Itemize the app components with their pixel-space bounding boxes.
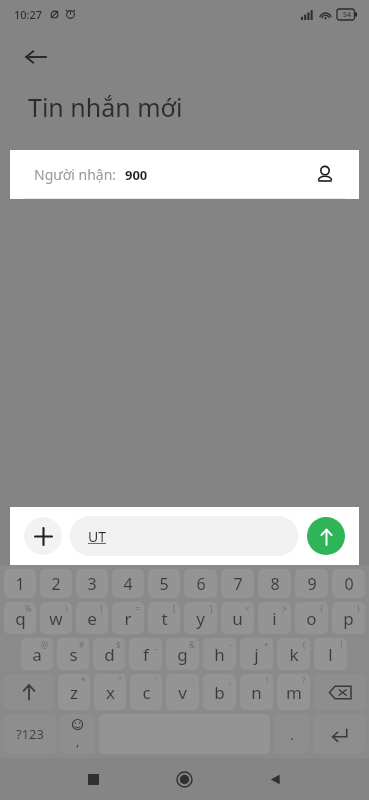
button[interactable]: Send xyxy=(307,517,345,555)
button[interactable]: 4 xyxy=(112,569,144,598)
button[interactable]: m xyxy=(277,674,310,710)
button[interactable]: Back xyxy=(18,40,52,74)
staticText: 54 xyxy=(343,10,352,20)
staticText: w xyxy=(49,607,63,630)
staticText: z xyxy=(70,681,78,704)
button[interactable]: o xyxy=(295,602,328,634)
button[interactable]: z xyxy=(58,674,90,710)
staticText: ( xyxy=(303,639,306,650)
staticText: e xyxy=(87,607,97,630)
staticText: - xyxy=(229,639,232,650)
button[interactable]: Shift xyxy=(4,674,54,710)
staticText: n xyxy=(251,681,262,704)
staticText: f xyxy=(143,643,149,666)
staticText: 5 xyxy=(159,573,169,595)
button[interactable]: c xyxy=(130,674,162,710)
button[interactable]: 0 xyxy=(332,569,365,598)
button[interactable]: x xyxy=(94,674,126,710)
staticText: 9 xyxy=(307,573,317,595)
button[interactable]: k xyxy=(277,638,310,670)
button[interactable]: r xyxy=(112,602,144,634)
button[interactable]: Home xyxy=(167,762,201,796)
staticText: u xyxy=(232,607,243,630)
staticText: { xyxy=(320,603,324,614)
button[interactable]: Recent apps xyxy=(76,762,110,796)
staticText: o xyxy=(306,607,317,630)
staticText: ?123 xyxy=(16,725,44,743)
button[interactable]: Enter xyxy=(313,714,365,754)
staticText: * xyxy=(81,675,86,686)
staticText: 6 xyxy=(196,573,206,595)
staticText: l xyxy=(328,643,333,666)
staticText: 3 xyxy=(87,573,97,595)
button[interactable]: s xyxy=(57,638,89,670)
button[interactable]: 5 xyxy=(148,569,180,598)
button[interactable]: 8 xyxy=(258,569,291,598)
staticText: q xyxy=(15,607,26,630)
button[interactable]: Emoji and comma xyxy=(60,714,95,754)
staticText: ' xyxy=(156,675,158,686)
staticText: > xyxy=(282,603,287,614)
button[interactable]: 9 xyxy=(295,569,328,598)
staticText: 900 xyxy=(125,166,148,184)
button[interactable]: l xyxy=(314,638,347,670)
staticText: g xyxy=(177,643,188,666)
staticText: & xyxy=(189,639,195,650)
button[interactable]: v xyxy=(166,674,199,710)
button[interactable]: ?123 xyxy=(4,714,56,754)
button[interactable]: Add attachment xyxy=(24,517,62,555)
button[interactable]: 3 xyxy=(76,569,108,598)
button[interactable]: 7 xyxy=(221,569,254,598)
button[interactable]: j xyxy=(240,638,273,670)
staticText: s xyxy=(69,643,78,666)
button[interactable]: Contacts xyxy=(311,161,339,189)
staticText: , xyxy=(76,733,80,749)
staticText: $ xyxy=(116,639,121,650)
staticText: d xyxy=(104,643,115,666)
button[interactable]: e xyxy=(76,602,108,634)
button[interactable]: 1 xyxy=(4,569,36,598)
staticText: 0 xyxy=(344,573,354,595)
button[interactable]: t xyxy=(148,602,180,634)
staticText: p xyxy=(343,607,354,630)
button[interactable]: Backspace xyxy=(314,674,365,710)
staticText: k xyxy=(289,643,299,666)
staticText: < xyxy=(245,603,250,614)
button[interactable]: n xyxy=(240,674,273,710)
staticText: i xyxy=(272,607,277,630)
button[interactable]: Back xyxy=(258,762,292,796)
staticText: " xyxy=(118,675,122,686)
staticText: ; xyxy=(229,675,232,686)
staticText: x xyxy=(106,681,115,704)
staticText: \ xyxy=(65,603,68,614)
button[interactable]: d xyxy=(93,638,125,670)
button[interactable]: 2 xyxy=(40,569,72,598)
staticText: = xyxy=(135,603,140,614)
button[interactable]: y xyxy=(184,602,217,634)
button[interactable]: q xyxy=(4,602,36,634)
button[interactable]: i xyxy=(258,602,291,634)
button[interactable]: b xyxy=(203,674,236,710)
button[interactable]: p xyxy=(332,602,365,634)
button[interactable]: w xyxy=(40,602,72,634)
staticText: 2 xyxy=(51,573,61,595)
staticText: | xyxy=(99,603,104,614)
staticText: ] xyxy=(210,603,213,614)
button[interactable]: f xyxy=(129,638,162,670)
button[interactable]: Người nhận: xyxy=(10,150,359,199)
button[interactable]: a xyxy=(21,638,53,670)
staticText: y xyxy=(196,607,205,630)
staticText: a xyxy=(32,643,42,666)
button[interactable]: g xyxy=(166,638,199,670)
staticText: 4 xyxy=(123,573,133,595)
staticText: UT xyxy=(88,527,107,546)
button[interactable]: 6 xyxy=(184,569,217,598)
button[interactable]: UT xyxy=(70,516,298,556)
staticText: v xyxy=(178,681,187,704)
button[interactable]: h xyxy=(203,638,236,670)
staticText: h xyxy=(214,643,225,666)
button[interactable]: u xyxy=(221,602,254,634)
staticText: + xyxy=(264,639,269,650)
